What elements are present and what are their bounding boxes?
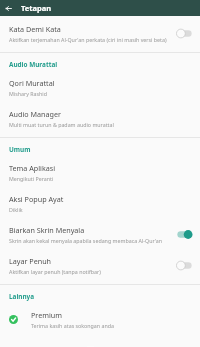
staticText: Lainnya xyxy=(9,292,35,301)
staticText: Audio Manager xyxy=(9,109,61,119)
staticText: Umum xyxy=(9,145,31,154)
staticText: Skrin akan kekal menyala apabila sedang … xyxy=(9,237,163,244)
button[interactable]: Aksi Popup Ayat xyxy=(0,188,200,219)
staticText: Aktifkan terjemahan Al-Qur'an perkata (c… xyxy=(9,36,167,43)
staticText: Layar Penuh xyxy=(9,256,52,266)
staticText: Mishary Rashid xyxy=(9,90,47,97)
staticText: Audio Murattal xyxy=(9,60,58,69)
staticText: Tema Aplikasi xyxy=(9,163,56,173)
staticText: Biarkan Skrin Menyala xyxy=(9,225,85,235)
staticText: Premium xyxy=(31,310,62,320)
staticText: Terima kasih atas sokongan anda xyxy=(31,322,114,329)
staticText: Qori Murattal xyxy=(9,78,55,88)
button[interactable]: Biarkan Skrin Menyala xyxy=(0,219,200,250)
button[interactable]: Tema Aplikasi xyxy=(0,157,200,188)
staticText: Aktifkan layar penuh (tanpa notifbar) xyxy=(9,268,101,275)
staticText: Mengikuti Peranti xyxy=(9,175,54,182)
staticText: Kata Demi Kata xyxy=(9,24,61,34)
staticText: Tetapan xyxy=(21,3,52,13)
button[interactable]: Layar Penuh xyxy=(0,250,200,281)
button[interactable]: Audio Manager xyxy=(0,103,200,134)
staticText: Multi muat turun & padam audio murattal xyxy=(9,121,114,128)
staticText: Diklik xyxy=(9,206,23,213)
button[interactable]: Back xyxy=(0,0,16,16)
button[interactable]: Kata Demi Kata xyxy=(0,18,200,49)
button[interactable]: Premium xyxy=(0,304,200,335)
staticText: Aksi Popup Ayat xyxy=(9,194,64,204)
button[interactable]: Qori Murattal xyxy=(0,72,200,103)
